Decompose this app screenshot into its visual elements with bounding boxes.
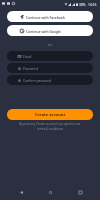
staticText: Email (23, 54, 32, 58)
button[interactable]: Home (43, 185, 57, 199)
button[interactable]: Confirm password (7, 75, 93, 85)
button[interactable]: Email (7, 51, 93, 61)
staticText: By pressing 'Create account' you agree t… (0, 122, 100, 130)
staticText: Password (23, 66, 38, 70)
button[interactable]: Create account (7, 109, 93, 120)
staticText: Continue with Google (26, 29, 61, 33)
staticText: Continue with Facebook (26, 15, 65, 19)
staticText: Confirm password (23, 78, 52, 82)
staticText: Create account (35, 112, 66, 117)
button[interactable]: Continue with Facebook (7, 11, 93, 22)
button[interactable]: Continue with Google (7, 25, 93, 36)
staticText: or (0, 42, 100, 47)
staticText: 14:16 (88, 2, 97, 6)
staticText: 38% (79, 2, 86, 6)
button[interactable]: Recent apps (73, 185, 87, 199)
button[interactable]: Back (14, 185, 28, 199)
button[interactable]: Password (7, 63, 93, 73)
